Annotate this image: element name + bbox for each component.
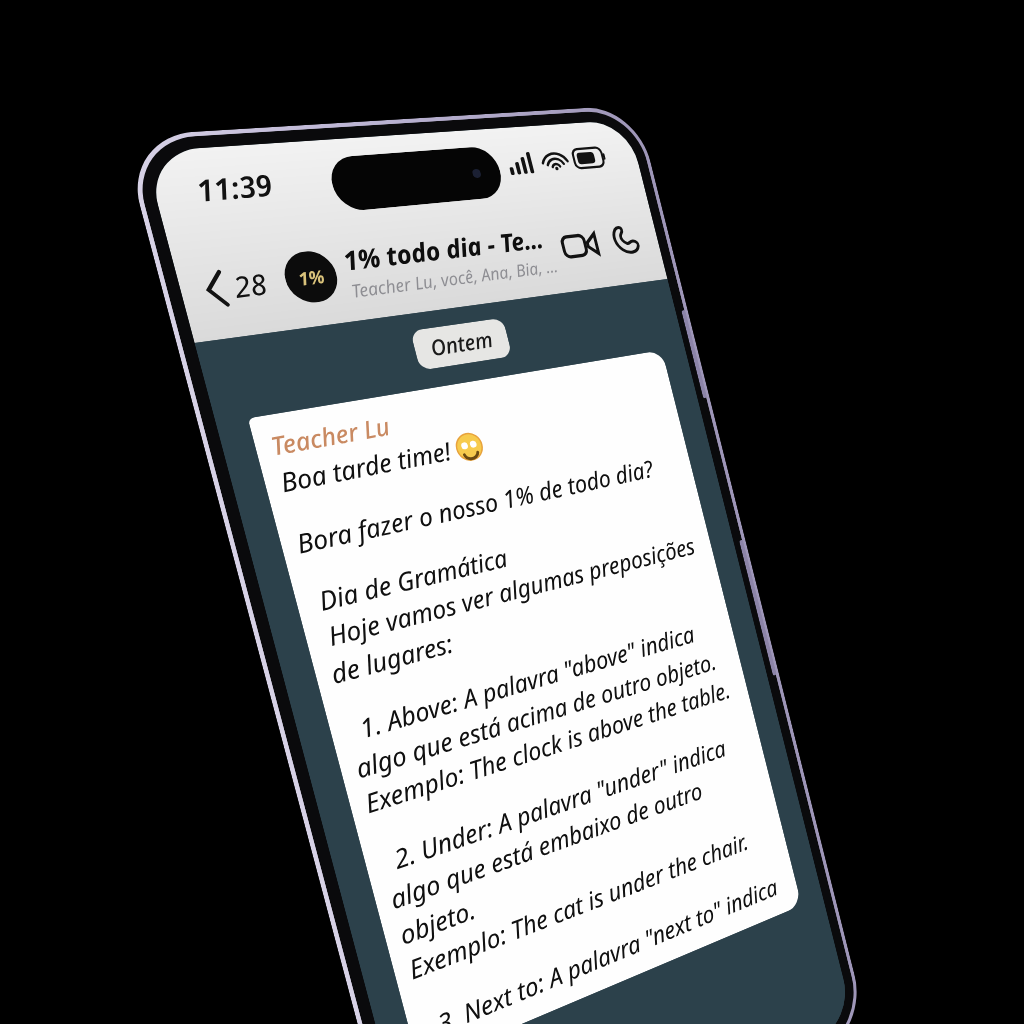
staticText: Hoje vamos ver algumas preposições de lu… xyxy=(317,528,712,691)
staticText: 3. Next to: A palavra "next to" indica xyxy=(421,870,780,1024)
staticText: Bora fazer o nosso 1% de todo dia? xyxy=(292,452,657,561)
staticText: Ontem xyxy=(427,325,496,363)
staticText: 1% todo dia - Teacher... xyxy=(339,220,555,278)
staticText: Exemplo: The clock is above the table. xyxy=(361,673,733,821)
staticText: Exemplo: The cat is under the chair. xyxy=(405,825,751,987)
staticText: Dia de Gramática xyxy=(308,540,511,620)
staticText: 11:39 xyxy=(191,164,277,211)
staticText: Teacher Lu, você, Ana, Bia, Carla xyxy=(348,254,561,303)
button[interactable]: 1% xyxy=(277,220,561,311)
staticText: 2. Under: A palavra "under" indica algo … xyxy=(377,723,769,953)
button[interactable]: Teacher Lu xyxy=(248,350,802,1024)
staticText: 28 xyxy=(229,264,271,305)
button[interactable]: Back, 28 unread xyxy=(193,257,279,316)
staticText: Boa tarde time! xyxy=(276,432,461,500)
button[interactable]: Ontem xyxy=(410,318,512,371)
staticText: 1. Above: A palavra "above" indica algo … xyxy=(342,610,733,786)
staticText: Teacher Lu xyxy=(267,408,394,462)
button[interactable]: Voice call xyxy=(604,220,647,261)
staticText: 1% xyxy=(295,264,327,291)
button[interactable]: Video call xyxy=(555,226,605,265)
